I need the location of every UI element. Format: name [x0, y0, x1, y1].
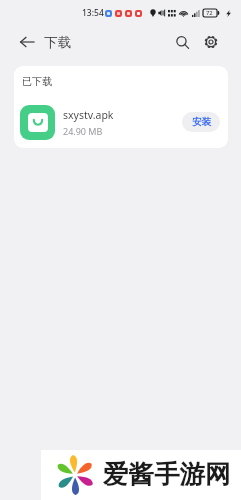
button[interactable]: sxystv.apk [14, 98, 228, 146]
button[interactable]: Settings [197, 28, 225, 56]
button[interactable]: Search [168, 28, 196, 56]
staticText: 已下载 [22, 75, 52, 88]
staticText: 24.90 MB [63, 125, 103, 137]
button[interactable]: 安装 [182, 112, 220, 132]
staticText: 安装 [192, 116, 211, 128]
staticText: 72 [206, 9, 213, 17]
staticText: sxystv.apk [63, 108, 114, 122]
staticText: 13:54 [82, 7, 104, 19]
staticText: 下载 [44, 34, 71, 51]
staticText: 爱酱手游网 [103, 458, 231, 490]
button[interactable]: Back [13, 28, 41, 56]
